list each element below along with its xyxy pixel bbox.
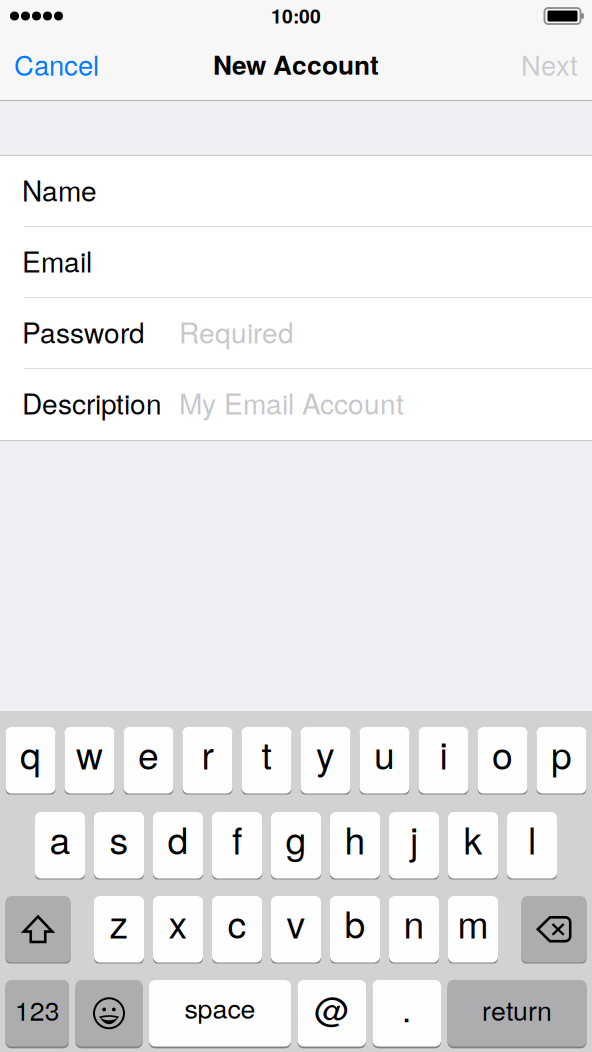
staticText: b xyxy=(344,895,365,949)
staticText: . xyxy=(402,982,412,1032)
button[interactable]: e xyxy=(123,726,173,794)
button[interactable]: y xyxy=(300,726,350,794)
button[interactable]: Name xyxy=(0,156,592,227)
staticText: u xyxy=(374,726,395,780)
button[interactable]: l xyxy=(507,811,557,879)
staticText: y xyxy=(316,726,335,780)
button[interactable]: w xyxy=(64,726,114,794)
button[interactable]: . xyxy=(372,979,441,1047)
staticText: return xyxy=(482,990,552,1028)
button[interactable]: b xyxy=(330,895,380,963)
staticText: p xyxy=(551,726,572,780)
button[interactable]: Delete xyxy=(521,895,586,963)
staticText: w xyxy=(76,726,103,780)
staticText: Cancel xyxy=(14,44,99,83)
staticText: r xyxy=(201,726,213,780)
staticText: n xyxy=(403,895,424,949)
staticText: Name xyxy=(22,169,97,210)
staticText: 10:00 xyxy=(271,2,321,29)
button[interactable]: Cancel xyxy=(0,32,111,100)
button[interactable]: c xyxy=(212,895,262,963)
button[interactable]: o xyxy=(477,726,527,794)
button[interactable]: @ xyxy=(297,979,366,1047)
staticText: space xyxy=(184,988,255,1026)
staticText: m xyxy=(457,895,488,949)
staticText: h xyxy=(344,811,365,865)
staticText: Email xyxy=(22,240,92,281)
button[interactable]: Shift xyxy=(5,895,70,963)
staticText: k xyxy=(463,811,482,865)
staticText: l xyxy=(528,811,536,865)
staticText: e xyxy=(138,726,159,780)
staticText: New Account xyxy=(213,45,379,83)
staticText: Password xyxy=(22,311,145,352)
button[interactable]: n xyxy=(389,895,439,963)
button[interactable]: r xyxy=(182,726,232,794)
button[interactable]: z xyxy=(94,895,144,963)
button[interactable]: a xyxy=(35,811,85,879)
button[interactable]: space xyxy=(149,979,291,1047)
button[interactable]: m xyxy=(448,895,498,963)
staticText: g xyxy=(285,811,306,865)
button[interactable]: Description xyxy=(0,369,592,440)
staticText: t xyxy=(261,726,271,780)
staticText: c xyxy=(227,895,246,949)
button[interactable]: 123 xyxy=(5,979,69,1047)
button[interactable]: i xyxy=(418,726,468,794)
staticText: i xyxy=(439,726,447,780)
staticText: d xyxy=(167,811,188,865)
staticText: s xyxy=(109,811,128,865)
button[interactable]: Emoji xyxy=(75,979,142,1047)
staticText: j xyxy=(410,811,418,865)
staticText: Required xyxy=(179,311,294,352)
staticText: Next xyxy=(521,44,578,83)
staticText: 123 xyxy=(15,990,60,1028)
button[interactable]: s xyxy=(94,811,144,879)
staticText: My Email Account xyxy=(179,382,404,423)
staticText: f xyxy=(232,811,242,865)
staticText: @ xyxy=(314,982,349,1032)
staticText: Description xyxy=(22,382,162,423)
button[interactable]: k xyxy=(448,811,498,879)
button[interactable]: p xyxy=(536,726,586,794)
staticText: v xyxy=(286,895,305,949)
button[interactable]: q xyxy=(5,726,55,794)
button[interactable]: f xyxy=(212,811,262,879)
button[interactable]: v xyxy=(271,895,321,963)
button[interactable]: Password xyxy=(0,298,592,369)
button[interactable]: d xyxy=(153,811,203,879)
button[interactable]: u xyxy=(359,726,409,794)
button[interactable]: t xyxy=(241,726,291,794)
button[interactable]: x xyxy=(153,895,203,963)
button[interactable]: Email xyxy=(0,227,592,298)
staticText: x xyxy=(168,895,187,949)
button[interactable]: j xyxy=(389,811,439,879)
staticText: a xyxy=(49,811,70,865)
staticText: o xyxy=(492,726,513,780)
staticText: q xyxy=(20,726,41,780)
button[interactable]: h xyxy=(330,811,380,879)
staticText: z xyxy=(109,895,128,949)
button[interactable]: return xyxy=(447,979,586,1047)
button[interactable]: Next xyxy=(509,32,592,100)
button[interactable]: g xyxy=(271,811,321,879)
